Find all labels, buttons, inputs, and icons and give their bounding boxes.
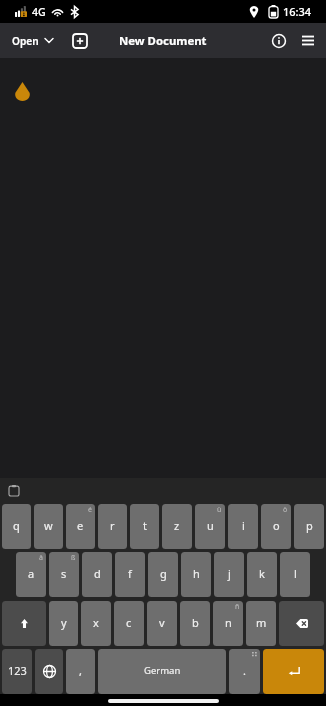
staticText: v (159, 615, 165, 630)
button[interactable]: u (195, 504, 225, 549)
staticText: u (207, 518, 214, 533)
button[interactable]: Enter (263, 649, 324, 694)
staticText: d (94, 566, 101, 581)
staticText: l (294, 566, 297, 581)
staticText: x (93, 615, 99, 630)
button[interactable]: v (147, 601, 177, 646)
staticText: ö (283, 505, 288, 515)
staticText: k (259, 566, 265, 581)
staticText: , (79, 663, 82, 678)
button[interactable]: t (130, 504, 159, 549)
staticText: m (256, 615, 267, 630)
button[interactable]: j (214, 552, 244, 597)
button[interactable]: k (247, 552, 277, 597)
button[interactable]: Menu (293, 23, 323, 58)
button[interactable]: w (34, 504, 63, 549)
staticText: t (143, 518, 147, 533)
button[interactable]: e (66, 504, 95, 549)
staticText: é (88, 505, 92, 515)
staticText: f (128, 566, 132, 581)
staticText: y (61, 615, 67, 630)
button[interactable]: German (98, 649, 226, 694)
button[interactable]: m (246, 601, 276, 646)
button[interactable]: l (280, 552, 310, 597)
staticText: German (144, 664, 181, 677)
button[interactable]: Backspace (279, 601, 324, 646)
staticText: . (243, 663, 246, 678)
button[interactable]: . (229, 649, 260, 694)
button[interactable]: Shift (2, 601, 46, 646)
button[interactable]: i (228, 504, 258, 549)
staticText: ñ (235, 602, 240, 612)
button[interactable]: , (66, 649, 95, 694)
button[interactable]: f (115, 552, 145, 597)
button[interactable]: x (81, 601, 111, 646)
staticText: ü (217, 505, 222, 515)
staticText: 16:34 (283, 4, 312, 19)
button[interactable]: Clipboard (3, 480, 25, 502)
staticText: i (242, 518, 245, 533)
staticText: g (160, 566, 167, 581)
staticText: o (273, 518, 280, 533)
button[interactable]: r (98, 504, 127, 549)
staticText: Open (12, 34, 39, 48)
staticText: p (306, 518, 313, 533)
button[interactable]: d (82, 552, 112, 597)
staticText: e (77, 518, 84, 533)
staticText: z (174, 518, 180, 533)
button[interactable]: 123 (2, 649, 32, 694)
button[interactable]: g (148, 552, 178, 597)
staticText: h (193, 566, 200, 581)
staticText: q (13, 518, 20, 533)
button[interactable]: c (114, 601, 144, 646)
staticText: s (61, 566, 67, 581)
staticText: a (28, 566, 35, 581)
staticText: b (192, 615, 199, 630)
button[interactable]: z (162, 504, 192, 549)
staticText: j (228, 566, 231, 581)
staticText: 123 (8, 663, 27, 678)
staticText: w (44, 518, 53, 533)
button[interactable]: n (213, 601, 243, 646)
button[interactable]: y (49, 601, 78, 646)
button[interactable]: New document (66, 23, 94, 58)
button[interactable]: p (294, 504, 324, 549)
button[interactable]: o (261, 504, 291, 549)
staticText: r (110, 518, 115, 533)
staticText: New Document (119, 33, 207, 49)
button[interactable]: a (16, 552, 46, 597)
button[interactable]: Change language (35, 649, 63, 694)
button[interactable]: q (2, 504, 31, 549)
staticText: ß (71, 553, 76, 563)
button[interactable]: Open (0, 23, 66, 58)
button[interactable]: b (180, 601, 210, 646)
staticText: 4G (32, 5, 46, 19)
staticText: n (225, 615, 232, 630)
staticText: ä (39, 553, 43, 563)
button[interactable]: h (181, 552, 211, 597)
button[interactable]: s (49, 552, 79, 597)
staticText: c (126, 615, 132, 630)
button[interactable]: Info (264, 23, 293, 58)
